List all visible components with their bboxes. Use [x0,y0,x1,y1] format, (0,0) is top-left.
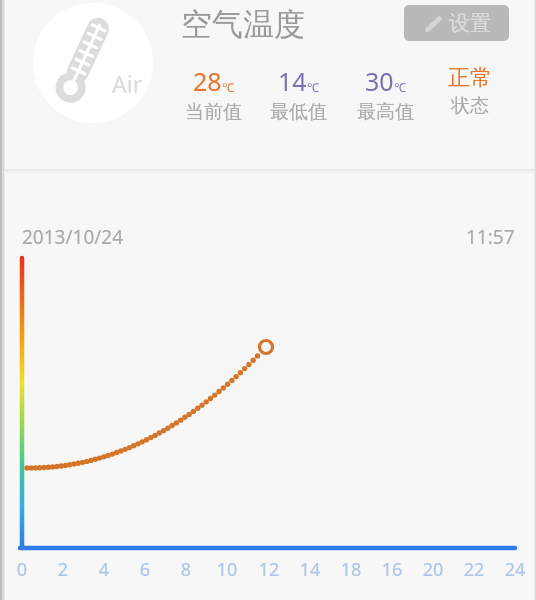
button[interactable]: 28 [169,64,257,124]
staticText: 最低值 [270,100,327,124]
button[interactable]: 正常 [426,64,514,118]
staticText: 10 [210,557,244,582]
staticText: 状态 [451,94,489,118]
staticText: 12 [252,557,286,582]
button[interactable]: 设置 [404,5,509,41]
staticText: ℃ [307,79,319,95]
button[interactable]: 14 [254,64,342,124]
staticText: 22 [457,557,491,582]
staticText: 2 [46,557,80,582]
staticText: 20 [416,557,450,582]
staticText: 最高值 [357,100,414,124]
staticText: 16 [375,557,409,582]
staticText: 14 [293,557,327,582]
staticText: ℃ [394,79,406,95]
staticText: 28 [193,64,222,98]
staticText: Air [112,68,143,99]
button[interactable]: 30 [341,64,429,124]
staticText: 4 [87,557,121,582]
staticText: 6 [128,557,162,582]
staticText: 设置 [449,10,491,36]
staticText: 11:57 [466,224,515,250]
staticText: 正常 [448,64,492,92]
staticText: 空气温度 [181,5,305,44]
staticText: 当前值 [185,100,242,124]
staticText: 14 [278,64,307,98]
staticText: 30 [365,64,394,98]
staticText: ℃ [222,79,234,95]
staticText: 24 [498,557,532,582]
staticText: 8 [169,557,203,582]
staticText: 18 [334,557,368,582]
staticText: 2013/10/24 [22,224,124,250]
staticText: 0 [5,557,39,582]
